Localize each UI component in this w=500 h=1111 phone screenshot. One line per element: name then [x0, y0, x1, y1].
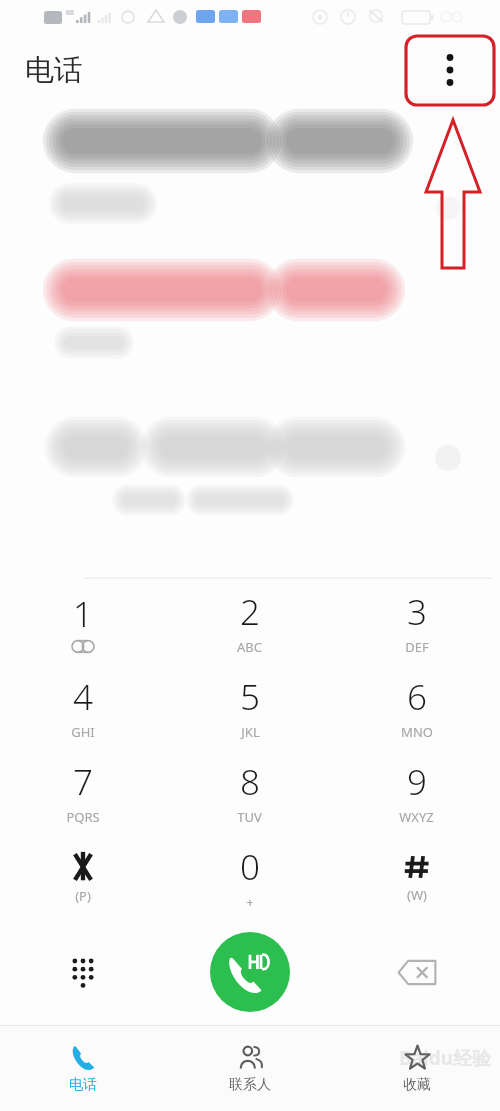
staticText: 电话 [25, 52, 83, 89]
staticText: 联系人 [229, 1076, 271, 1094]
button[interactable]: Delete [333, 919, 500, 1025]
staticText: 2 [240, 588, 260, 636]
staticText: 5 [240, 673, 260, 721]
staticText: (W) [407, 886, 427, 904]
staticText: ABC [237, 638, 262, 656]
button[interactable]: (W) [333, 834, 500, 919]
button[interactable]: 3 [333, 579, 500, 664]
staticText: 7 [73, 758, 93, 806]
button[interactable]: 9 [333, 749, 500, 834]
staticText: + [246, 893, 254, 911]
staticText: (P) [75, 887, 91, 905]
staticText: 6 [407, 673, 427, 721]
staticText: TUV [237, 808, 262, 826]
button[interactable]: 8 [166, 749, 333, 834]
button[interactable]: Hide dialpad [0, 919, 166, 1025]
button[interactable]: 2 [166, 579, 333, 664]
button[interactable]: Call [210, 932, 290, 1012]
staticText: 3 [407, 588, 427, 636]
staticText: Baidu经验 [399, 1045, 492, 1071]
button[interactable]: 收藏 [333, 1026, 500, 1111]
button[interactable]: 电话 [0, 1026, 166, 1111]
staticText: GHI [71, 723, 95, 741]
staticText: 电话 [69, 1076, 97, 1094]
button[interactable]: 5 [166, 664, 333, 749]
staticText: DEF [405, 638, 429, 656]
staticText: 4 [73, 673, 93, 721]
staticText: WXYZ [399, 808, 434, 826]
staticText: JKL [241, 723, 260, 741]
button[interactable]: (P) [0, 834, 166, 919]
button[interactable]: 1 [0, 579, 166, 664]
staticText: 1 [73, 590, 93, 638]
button[interactable]: 7 [0, 749, 166, 834]
staticText: 8 [240, 758, 260, 806]
button[interactable]: More options [406, 35, 494, 105]
staticText: 0 [240, 843, 260, 891]
button[interactable]: 4 [0, 664, 166, 749]
staticText: MNO [401, 723, 433, 741]
staticText: 9 [407, 758, 427, 806]
button[interactable]: 联系人 [166, 1026, 333, 1111]
staticText: PQRS [66, 808, 100, 826]
button[interactable]: 6 [333, 664, 500, 749]
button[interactable]: 0 [166, 834, 333, 919]
staticText: 收藏 [403, 1076, 431, 1094]
